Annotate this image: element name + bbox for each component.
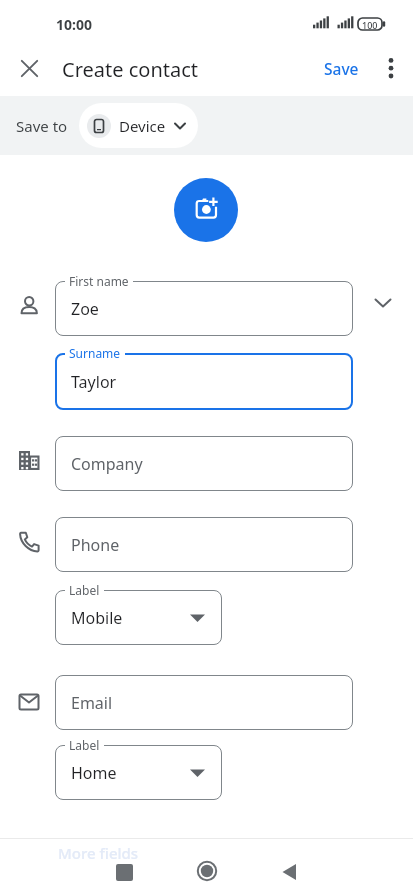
button[interactable]: Zoe [55,281,353,336]
staticText: Create contact [62,56,199,83]
staticText: Label [69,737,100,753]
staticText: Label [69,582,100,598]
staticText: Taylor [71,371,117,393]
button[interactable]: Save [314,44,369,92]
button[interactable] [369,44,413,91]
button[interactable] [106,854,142,890]
staticText: Company [71,453,143,475]
button[interactable]: More fields [58,843,139,863]
button[interactable] [174,178,238,242]
button[interactable]: Home [55,745,222,800]
staticText: Save to [16,116,68,136]
staticText: Device [119,116,166,136]
staticText: Phone [71,534,120,556]
button[interactable]: Device [79,103,198,148]
button[interactable] [7,46,51,90]
staticText: Zoe [71,298,99,320]
staticText: Email [71,692,113,714]
staticText: Mobile [71,607,123,629]
staticText: Home [71,762,117,784]
staticText: 10:00 [56,15,92,34]
button[interactable]: Taylor [55,353,353,410]
button[interactable]: Mobile [55,590,222,645]
button[interactable] [188,852,226,890]
staticText: Surname [69,345,121,361]
button[interactable]: Company [55,436,353,491]
staticText: First name [69,273,129,289]
button[interactable]: Email [55,675,353,730]
staticText: Save [324,58,359,79]
button[interactable] [374,294,392,312]
button[interactable]: Phone [55,517,353,572]
button[interactable] [272,854,308,890]
staticText: 100 [362,19,378,31]
